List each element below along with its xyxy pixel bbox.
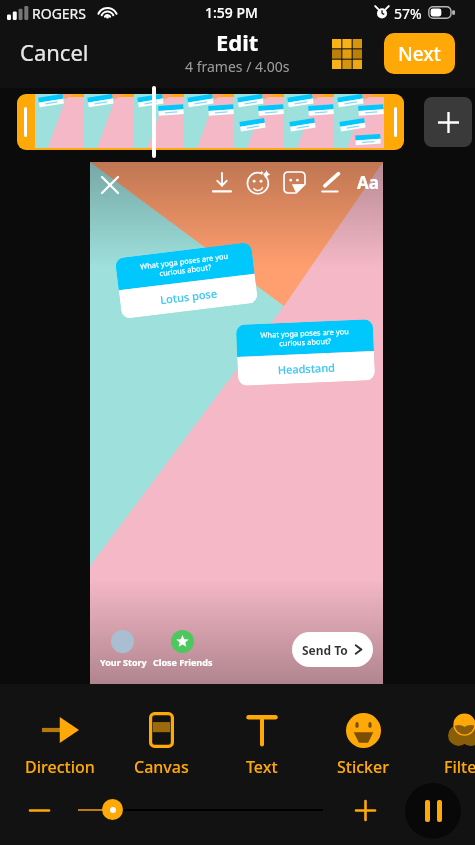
- staticText: Close Friends: [153, 656, 213, 668]
- staticText: Headstand: [277, 360, 336, 377]
- button[interactable]: Close Friends: [171, 630, 194, 653]
- staticText: Your Story: [100, 656, 147, 668]
- staticText: 57%: [394, 4, 422, 23]
- button[interactable]: Next: [384, 33, 455, 74]
- button[interactable]: Effects: [244, 168, 273, 197]
- button[interactable]: Save: [207, 168, 236, 197]
- button[interactable]: [17, 94, 404, 150]
- staticText: Direction: [25, 756, 95, 778]
- staticText: Canvas: [134, 756, 189, 778]
- button[interactable]: Close: [95, 170, 125, 200]
- button[interactable]: Sticker: [313, 711, 413, 778]
- staticText: Aa: [357, 171, 379, 194]
- staticText: What yoga poses are you curious about?: [260, 326, 350, 350]
- staticText: Sticker: [337, 756, 390, 778]
- staticText: What yoga poses are you curious about?: [139, 251, 230, 281]
- button[interactable]: Grid view: [326, 33, 367, 74]
- button[interactable]: Canvas: [111, 711, 211, 778]
- staticText: Filter: [444, 756, 475, 778]
- button[interactable]: Zoom in: [352, 797, 378, 823]
- staticText: Text: [246, 756, 278, 778]
- staticText: Next: [398, 41, 441, 67]
- button[interactable]: Draw: [316, 168, 345, 197]
- staticText: ROGERS: [32, 4, 87, 23]
- button[interactable]: What yoga poses are you curious about?: [115, 242, 258, 319]
- button[interactable]: Zoom slider: [102, 799, 123, 820]
- button[interactable]: Cancel: [12, 31, 97, 73]
- button[interactable]: Stickers: [280, 168, 309, 197]
- button[interactable]: Zoom out: [26, 797, 52, 823]
- button[interactable]: Filter: [414, 711, 475, 778]
- staticText: Cancel: [20, 37, 89, 67]
- button[interactable]: Add clip: [424, 97, 472, 147]
- button[interactable]: Your Story: [111, 630, 134, 653]
- staticText: Lotus pose: [159, 285, 219, 307]
- button[interactable]: Text: [212, 711, 312, 778]
- staticText: Edit: [216, 27, 259, 57]
- button[interactable]: What yoga poses are you curious about?: [236, 319, 375, 386]
- staticText: 1:59 PM: [205, 3, 258, 22]
- staticText: Send To: [302, 642, 348, 658]
- staticText: 4 frames / 4.00s: [185, 57, 290, 76]
- button[interactable]: Add text: [353, 168, 382, 197]
- button[interactable]: Send To: [292, 632, 373, 667]
- button[interactable]: Direction: [10, 711, 110, 778]
- button[interactable]: Pause: [405, 783, 461, 839]
